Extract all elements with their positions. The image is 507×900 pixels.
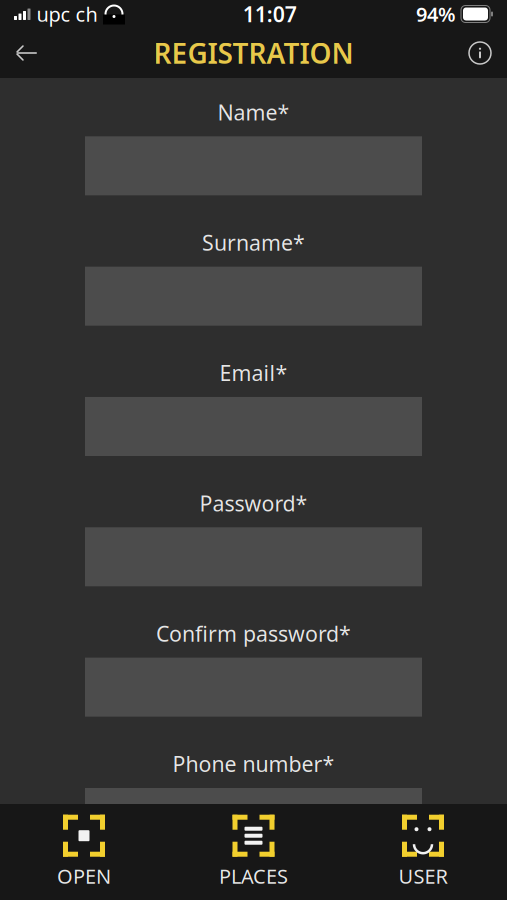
staticText: USER [398, 863, 447, 889]
button[interactable]: OPEN [14, 811, 154, 893]
button[interactable]: Information [453, 30, 507, 76]
staticText: 94% [416, 1, 456, 27]
button[interactable]: +41 [85, 788, 422, 847]
staticText: 11:07 [243, 0, 297, 28]
staticText: Phone number* [172, 750, 334, 778]
staticText: REGISTRATION [153, 34, 353, 72]
staticText: OPEN [57, 863, 111, 889]
staticText: upc ch [36, 1, 97, 27]
staticText: Password* [199, 489, 307, 517]
staticText: Confirm password* [156, 619, 351, 648]
staticText: PLACES [219, 863, 288, 889]
staticText: Surname* [202, 228, 305, 257]
button[interactable]: PLACES [183, 811, 323, 893]
button[interactable]: Back [0, 30, 54, 76]
staticText: Email* [219, 359, 287, 387]
button[interactable]: USER [353, 811, 493, 893]
staticText: +41 [107, 799, 155, 836]
staticText: Name* [217, 98, 289, 126]
